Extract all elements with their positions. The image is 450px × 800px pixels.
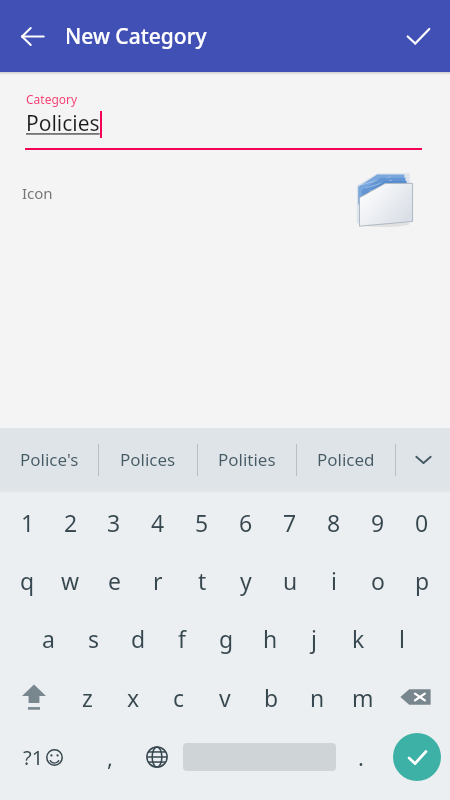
staticText: r: [153, 565, 163, 596]
staticText: q: [20, 565, 35, 596]
button[interactable]: l: [380, 609, 424, 667]
button[interactable]: h: [248, 609, 292, 667]
staticText: Police's: [20, 448, 79, 471]
staticText: u: [283, 565, 298, 596]
staticText: k: [352, 623, 365, 654]
staticText: Polices: [120, 448, 176, 471]
button[interactable]: Symbols and emoji: [0, 727, 86, 787]
button[interactable]: Save: [394, 12, 442, 60]
button[interactable]: n: [294, 667, 340, 727]
button[interactable]: d: [116, 609, 160, 667]
staticText: e: [108, 565, 121, 596]
staticText: s: [88, 623, 100, 654]
button[interactable]: Choose icon: [344, 159, 424, 239]
button[interactable]: e: [92, 551, 136, 609]
button[interactable]: b: [248, 667, 294, 727]
button[interactable]: 1: [6, 493, 49, 551]
staticText: Category: [26, 91, 78, 107]
staticText: 8: [327, 507, 341, 538]
button[interactable]: y: [224, 551, 268, 609]
button[interactable]: 4: [136, 493, 180, 551]
button[interactable]: k: [336, 609, 380, 667]
button[interactable]: Change language: [134, 727, 180, 787]
button[interactable]: v: [202, 667, 248, 727]
button[interactable]: Enter: [384, 727, 450, 787]
staticText: b: [264, 682, 279, 713]
button[interactable]: 8: [312, 493, 356, 551]
button[interactable]: m: [340, 667, 386, 727]
button[interactable]: 0: [400, 493, 444, 551]
staticText: d: [131, 623, 146, 654]
staticText: l: [399, 623, 405, 654]
staticText: x: [127, 682, 140, 713]
button[interactable]: Back: [8, 12, 56, 60]
staticText: i: [331, 565, 337, 596]
button[interactable]: .: [338, 727, 384, 787]
button[interactable]: More suggestions: [396, 428, 450, 491]
button[interactable]: ,: [86, 727, 134, 787]
staticText: 9: [371, 507, 385, 538]
button[interactable]: q: [6, 551, 49, 609]
button[interactable]: f: [160, 609, 204, 667]
button[interactable]: w: [49, 551, 92, 609]
staticText: w: [61, 565, 80, 596]
button[interactable]: u: [268, 551, 312, 609]
button[interactable]: 2: [49, 493, 92, 551]
staticText: Policed: [317, 448, 375, 471]
staticText: m: [352, 682, 374, 713]
button[interactable]: x: [110, 667, 156, 727]
button[interactable]: r: [136, 551, 180, 609]
button[interactable]: i: [312, 551, 356, 609]
button[interactable]: Backspace: [386, 667, 446, 727]
staticText: 2: [64, 507, 78, 538]
staticText: t: [198, 565, 207, 596]
button[interactable]: Police's: [0, 428, 98, 491]
staticText: c: [173, 682, 185, 713]
button[interactable]: 5: [180, 493, 224, 551]
staticText: y: [240, 565, 252, 596]
staticText: z: [82, 682, 93, 713]
staticText: 5: [195, 507, 209, 538]
staticText: v: [219, 682, 231, 713]
button[interactable]: 9: [356, 493, 400, 551]
staticText: j: [311, 623, 317, 654]
staticText: New Category: [65, 22, 207, 51]
staticText: Icon: [22, 183, 53, 203]
button[interactable]: Polities: [198, 428, 296, 491]
staticText: ?1: [23, 744, 44, 771]
button[interactable]: p: [400, 551, 444, 609]
staticText: 6: [239, 507, 253, 538]
button[interactable]: 7: [268, 493, 312, 551]
button[interactable]: 3: [92, 493, 136, 551]
button[interactable]: Policed: [297, 428, 395, 491]
button[interactable]: c: [156, 667, 202, 727]
button[interactable]: Shift: [4, 667, 64, 727]
button[interactable]: t: [180, 551, 224, 609]
staticText: 7: [283, 507, 297, 538]
button[interactable]: g: [204, 609, 248, 667]
staticText: Polities: [218, 448, 276, 471]
staticText: 1: [21, 507, 35, 538]
staticText: p: [415, 565, 430, 596]
button[interactable]: Polices: [99, 428, 197, 491]
button[interactable]: j: [292, 609, 336, 667]
staticText: Policies: [26, 109, 100, 138]
staticText: g: [219, 623, 234, 654]
staticText: o: [371, 565, 385, 596]
staticText: 3: [107, 507, 121, 538]
button[interactable]: Space: [180, 727, 338, 787]
button[interactable]: a: [26, 609, 71, 667]
staticText: f: [178, 623, 186, 654]
staticText: n: [310, 682, 325, 713]
staticText: .: [358, 742, 364, 772]
button[interactable]: s: [71, 609, 116, 667]
button[interactable]: z: [64, 667, 110, 727]
staticText: 0: [415, 507, 429, 538]
button[interactable]: 6: [224, 493, 268, 551]
staticText: ,: [107, 742, 113, 772]
staticText: 4: [151, 507, 165, 538]
staticText: a: [42, 623, 55, 654]
button[interactable]: o: [356, 551, 400, 609]
staticText: h: [263, 623, 278, 654]
